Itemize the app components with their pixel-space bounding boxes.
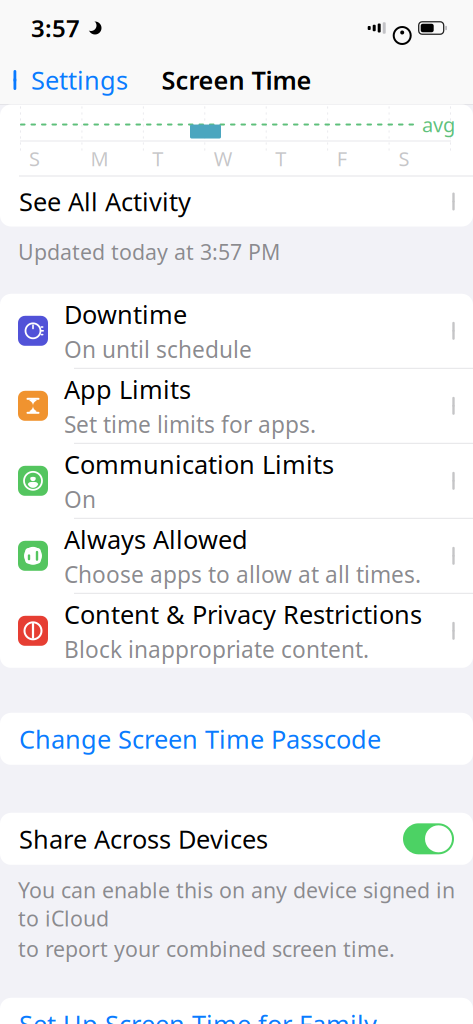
button[interactable]: Change Screen Time Passcode — [0, 713, 473, 765]
button[interactable]: Set Up Screen Time for Family — [0, 998, 473, 1024]
staticText: You can enable this on any device signed… — [18, 876, 455, 932]
staticText: Block inappropriate content. — [64, 634, 369, 664]
staticText: On until schedule — [64, 334, 252, 364]
staticText: Updated today at 3:57 PM — [18, 237, 280, 266]
staticText: Settings — [31, 63, 128, 97]
button[interactable]: Downtime — [0, 294, 473, 369]
staticText: Content & Privacy Restrictions — [64, 597, 422, 631]
staticText: T — [152, 145, 163, 172]
staticText: On — [64, 484, 96, 514]
staticText: S — [398, 145, 409, 172]
staticText: W — [214, 145, 233, 172]
button[interactable]: See All Activity — [0, 176, 473, 226]
button[interactable]: Settings — [0, 54, 128, 106]
staticText: Share Across Devices — [19, 822, 268, 856]
staticText: avg — [422, 111, 455, 138]
staticText: Always Allowed — [64, 522, 248, 556]
staticText: Communication Limits — [64, 447, 334, 481]
staticText: Screen Time — [161, 63, 311, 97]
staticText: S — [29, 145, 40, 172]
button[interactable]: Always Allowed — [0, 519, 473, 594]
staticText: T — [275, 145, 286, 172]
staticText: M — [91, 145, 109, 172]
staticText: App Limits — [64, 372, 191, 406]
button[interactable]: Content & Privacy Restrictions — [0, 594, 473, 668]
button[interactable]: App Limits — [0, 369, 473, 444]
staticText: 3:57 — [31, 12, 80, 44]
staticText: Change Screen Time Passcode — [19, 722, 381, 756]
button[interactable]: Share Across Devices — [0, 813, 473, 865]
staticText: Set time limits for apps. — [64, 409, 316, 439]
staticText: F — [337, 145, 347, 172]
staticText: Set Up Screen Time for Family — [19, 1007, 377, 1024]
staticText: Choose apps to allow at all times. — [64, 559, 421, 589]
staticText: See All Activity — [19, 185, 191, 218]
button[interactable]: Communication Limits — [0, 444, 473, 519]
staticText: to report your combined screen time. — [18, 934, 395, 963]
staticText: Downtime — [64, 297, 187, 331]
